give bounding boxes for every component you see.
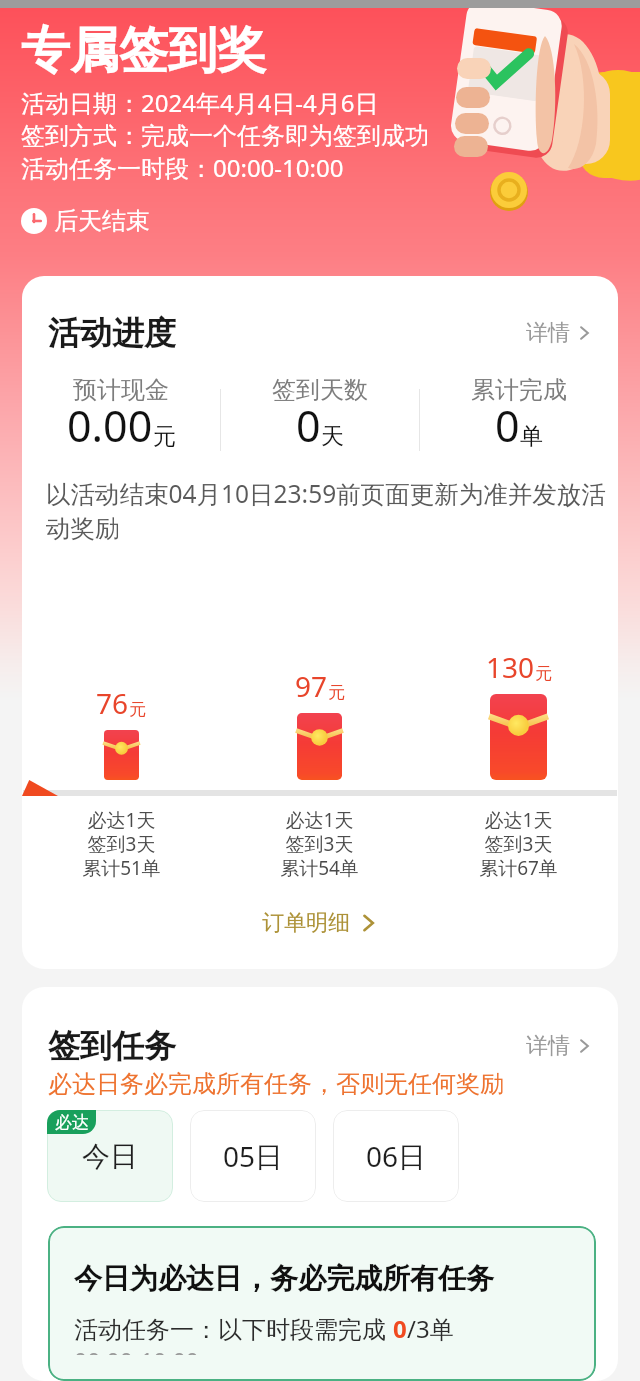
staticText: 130 — [486, 648, 535, 686]
staticText: 详情 — [526, 1032, 570, 1060]
staticText: 单 — [520, 422, 543, 451]
staticText: 97 — [295, 667, 328, 705]
staticText: 签到天数 — [272, 375, 368, 405]
staticText: 专属签到奖 — [21, 20, 266, 82]
staticText: 活动进度 — [48, 313, 176, 353]
staticText: 0.00 — [67, 396, 153, 455]
staticText: 详情 — [526, 319, 570, 347]
staticText: 必达1天 签到3天 累计51单 — [82, 807, 161, 881]
staticText: 元 — [535, 663, 552, 684]
button[interactable]: 详情 — [526, 319, 592, 347]
staticText: 订单明细 — [262, 909, 350, 937]
staticText: 今日为必达日，务必完成所有任务 — [74, 1261, 494, 1296]
staticText: 0 — [393, 1312, 407, 1345]
staticText: 天 — [321, 422, 344, 451]
staticText: 元 — [153, 422, 176, 451]
staticText: 今日 — [82, 1139, 138, 1174]
staticText: 以活动结束04月10日23:59前页面更新为准并发放活动奖励 — [46, 477, 608, 545]
button[interactable]: Time remaining — [21, 206, 150, 236]
staticText: 必达1天 签到3天 累计54单 — [280, 807, 359, 881]
button[interactable]: 详情 — [526, 1032, 592, 1060]
button[interactable]: 今日 — [47, 1110, 173, 1202]
button[interactable]: 06日 — [333, 1110, 459, 1202]
staticText: 元 — [129, 699, 146, 720]
staticText: 活动任务一：以下时段需完成 — [74, 1312, 393, 1345]
staticText: 必达日务必完成所有任务，否则无任何奖励 — [48, 1069, 504, 1099]
staticText: /3单 — [407, 1312, 454, 1345]
button[interactable]: 订单明细 — [22, 909, 618, 937]
staticText: 预计现金 — [73, 375, 169, 405]
staticText: 元 — [328, 682, 345, 703]
staticText: 必达1天 签到3天 累计67单 — [479, 807, 558, 881]
other: Time remaining — [21, 208, 47, 234]
staticText: 06日 — [366, 1137, 427, 1175]
staticText: 后天结束 — [54, 206, 150, 236]
staticText: 00:00-10:00 — [74, 1345, 199, 1355]
staticText: 必达 — [55, 1112, 89, 1133]
staticText: 0 — [495, 396, 520, 455]
button[interactable]: 05日 — [190, 1110, 316, 1202]
staticText: 76 — [96, 684, 129, 722]
staticText: 0 — [296, 396, 321, 455]
staticText: 累计完成 — [471, 375, 567, 405]
staticText: 活动日期：2024年4月4日-4月6日 签到方式：完成一个任务即为签到成功 活动… — [21, 86, 429, 184]
staticText: 05日 — [223, 1137, 284, 1175]
staticText: 签到任务 — [48, 1026, 176, 1066]
